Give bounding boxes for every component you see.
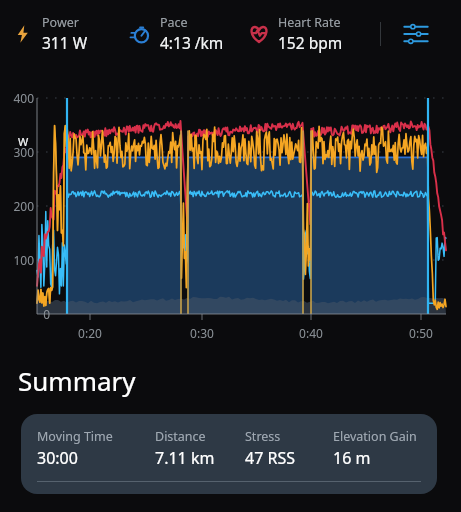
staticText: 400 — [4, 90, 34, 106]
staticText: 30:00 — [37, 447, 78, 469]
staticText: 0 — [20, 306, 50, 322]
staticText: 16 m — [333, 447, 371, 469]
staticText: 100 — [4, 252, 34, 268]
staticText: Moving Time — [37, 428, 113, 445]
staticText: Elevation Gain — [333, 428, 417, 445]
staticText: Heart Rate — [278, 14, 341, 31]
staticText: Distance — [155, 428, 206, 445]
staticText: Power — [42, 14, 79, 31]
staticText: 311 W — [42, 32, 88, 53]
staticText: 0:40 — [291, 325, 331, 341]
staticText: 152 bpm — [278, 32, 343, 53]
staticText: 300 — [4, 144, 34, 160]
staticText: 7.11 km — [155, 447, 215, 469]
button[interactable]: Moving Time — [21, 414, 437, 494]
staticText: 0:50 — [401, 325, 441, 341]
button[interactable]: Heart Rate — [248, 14, 343, 53]
staticText: W — [18, 134, 29, 149]
button[interactable]: Chart settings — [400, 18, 432, 50]
staticText: Stress — [245, 428, 281, 445]
staticText: 0:20 — [70, 325, 110, 341]
staticText: 0:30 — [182, 325, 222, 341]
button[interactable]: Pace — [130, 14, 224, 53]
button[interactable]: Power — [12, 14, 88, 53]
staticText: Summary — [18, 363, 136, 398]
staticText: 200 — [4, 198, 34, 214]
staticText: 4:13 /km — [160, 32, 224, 53]
staticText: Pace — [160, 14, 188, 31]
staticText: 47 RSS — [245, 447, 295, 469]
